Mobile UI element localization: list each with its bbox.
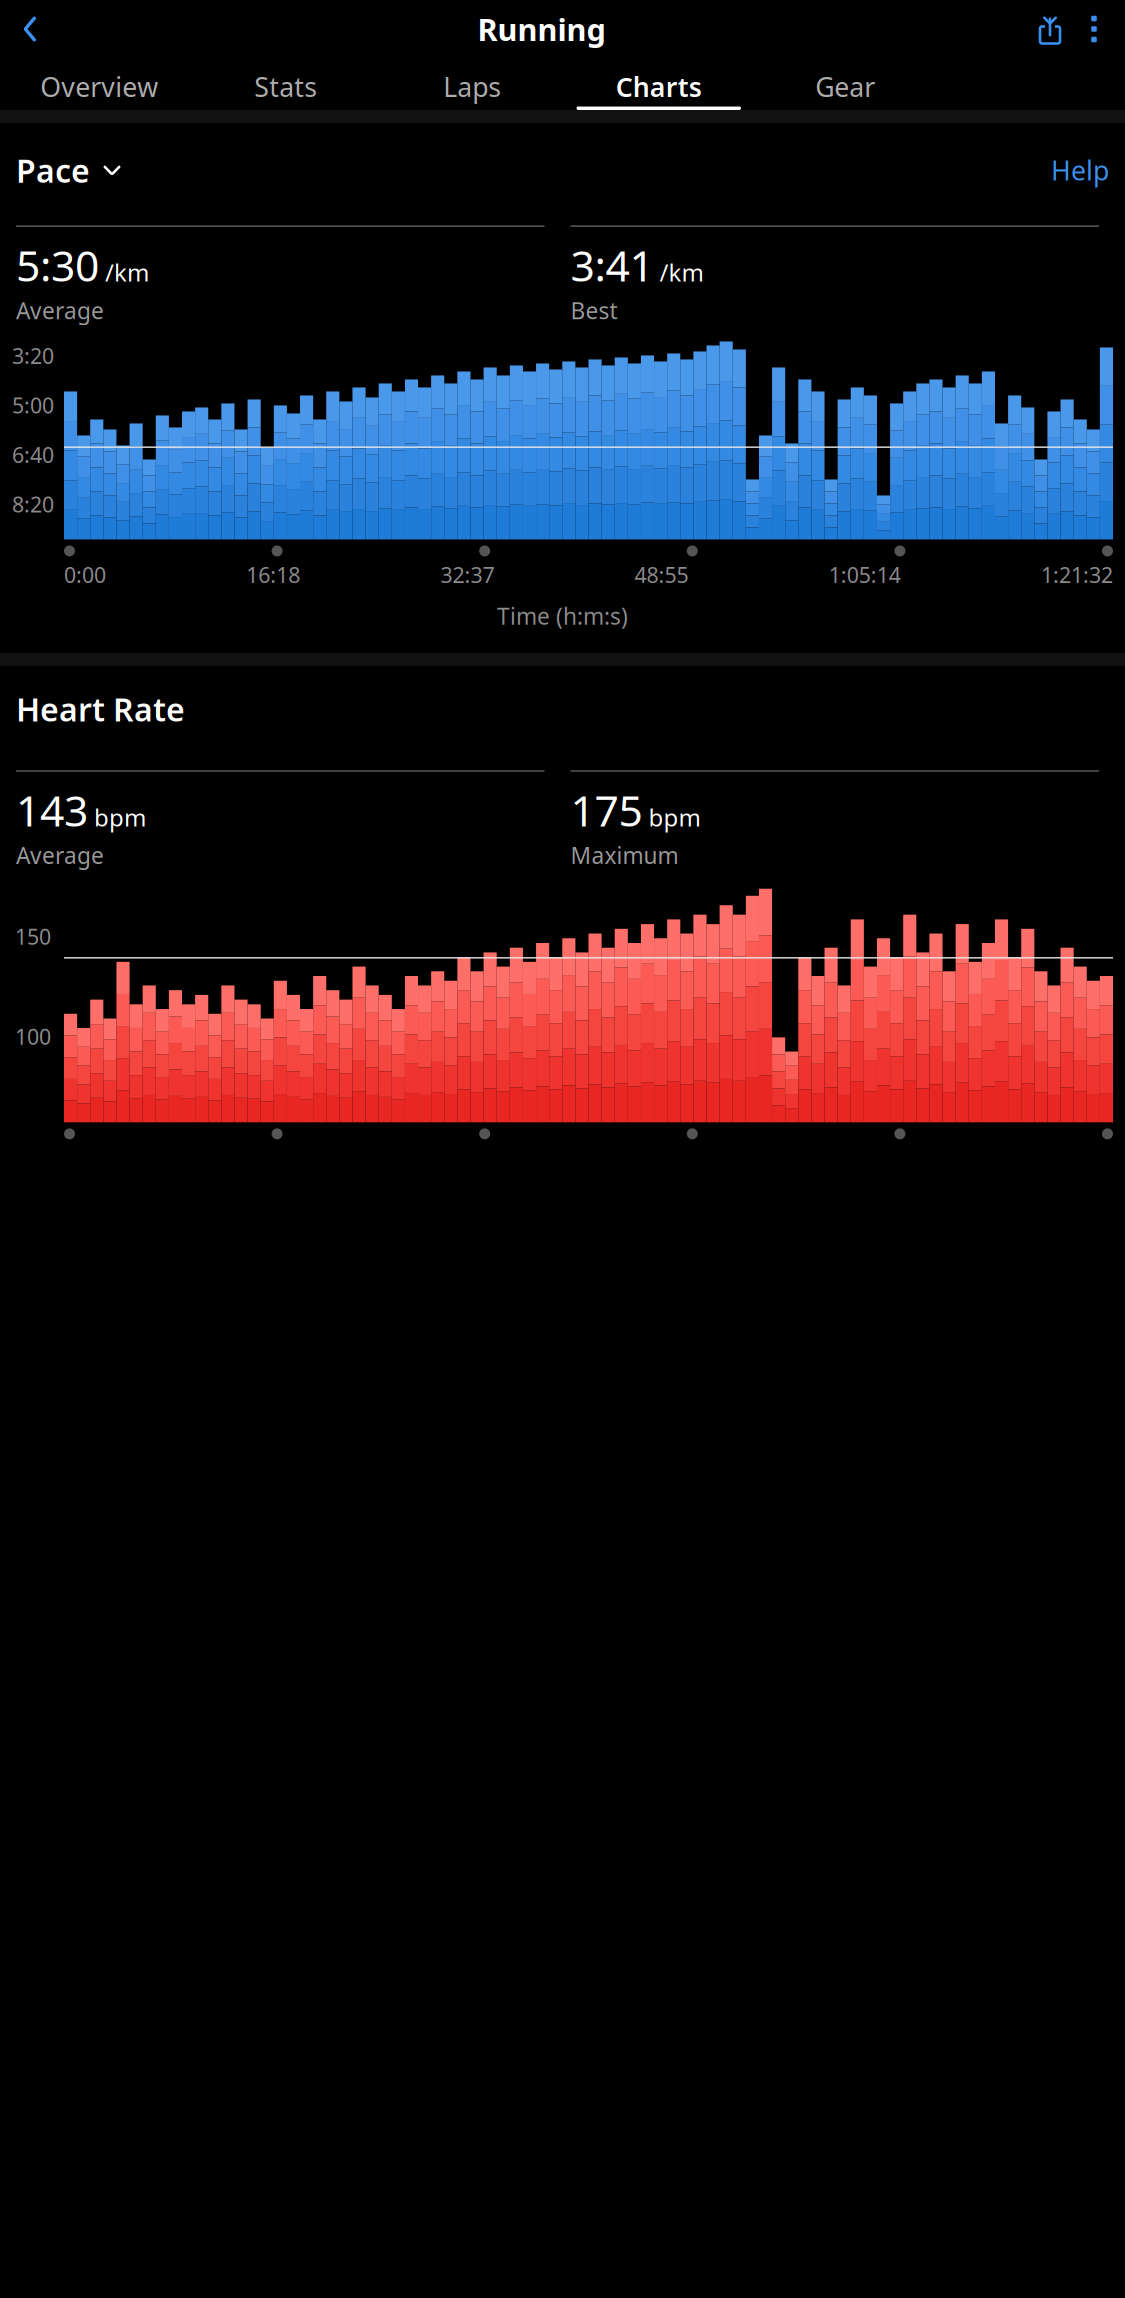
staticText: 5:30	[16, 237, 99, 293]
staticText: bpm	[94, 801, 146, 833]
staticText: Laps	[443, 69, 501, 104]
staticText: Best	[570, 295, 617, 325]
staticText: 1:05:14	[829, 560, 901, 589]
button[interactable]: Help	[1051, 146, 1109, 194]
staticText: Average	[16, 295, 104, 325]
staticText: Pace	[16, 149, 90, 191]
button[interactable]: Gear	[752, 58, 938, 110]
staticText: 5:00	[12, 391, 54, 419]
staticText: Running	[477, 9, 605, 49]
staticText: Heart Rate	[16, 688, 185, 730]
staticText: 0:00	[64, 560, 106, 589]
staticText: Charts	[616, 69, 702, 104]
staticText: Average	[16, 840, 104, 870]
staticText: Help	[1051, 152, 1109, 188]
staticText: 143	[16, 782, 88, 838]
button[interactable]: Back	[6, 5, 54, 53]
staticText: Time (h:m:s)	[497, 601, 628, 631]
staticText: 1:21:32	[1041, 560, 1113, 589]
staticText: /km	[105, 256, 149, 288]
button[interactable]: Pace	[16, 143, 122, 197]
staticText: 150	[15, 922, 51, 950]
button[interactable]: Overview	[6, 58, 192, 110]
staticText: Overview	[40, 69, 158, 104]
staticText: 3:41	[570, 237, 653, 293]
button[interactable]: Share	[1029, 8, 1071, 50]
staticText: 48:55	[635, 560, 689, 589]
staticText: 8:20	[12, 490, 54, 518]
staticText: 175	[570, 782, 642, 838]
button[interactable]: Laps	[379, 58, 565, 110]
staticText: Gear	[815, 69, 875, 104]
staticText: Maximum	[570, 840, 678, 870]
staticText: 6:40	[12, 440, 54, 469]
button[interactable]: Stats	[192, 58, 379, 110]
staticText: 100	[15, 1022, 51, 1051]
staticText: bpm	[648, 801, 700, 833]
button[interactable]: Charts	[565, 58, 752, 110]
staticText: Stats	[254, 69, 317, 104]
staticText: /km	[659, 256, 703, 288]
staticText: 3:20	[12, 341, 54, 370]
button[interactable]: More options	[1071, 8, 1117, 50]
staticText: 16:18	[246, 560, 300, 589]
staticText: 32:37	[440, 560, 494, 589]
